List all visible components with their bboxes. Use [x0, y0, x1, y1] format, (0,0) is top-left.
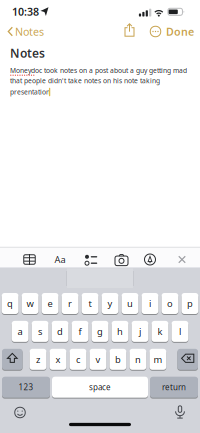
button[interactable]: g [92, 320, 108, 343]
button[interactable]: e [42, 292, 58, 315]
button[interactable]: z [30, 348, 46, 371]
staticText: return [162, 382, 186, 392]
button[interactable]: y [102, 292, 118, 315]
staticText: 10:38 [12, 4, 39, 19]
button[interactable]: Emoji [14, 406, 26, 418]
button[interactable]: f [72, 320, 88, 343]
button[interactable]: a [12, 320, 28, 343]
staticText: c [76, 353, 80, 365]
button[interactable]: Notes [0, 21, 44, 41]
staticText: g [97, 325, 103, 338]
staticText: z [36, 353, 40, 365]
button[interactable]: 123 [2, 376, 50, 399]
button[interactable]: j [132, 320, 148, 343]
button[interactable]: c [70, 348, 86, 371]
button[interactable]: Insert table [23, 253, 36, 266]
button[interactable]: b [109, 348, 126, 371]
button[interactable]: v [89, 348, 106, 371]
button[interactable]: k [152, 320, 168, 343]
button[interactable]: n [129, 348, 146, 371]
button[interactable]: o [161, 292, 178, 315]
button[interactable]: Done [166, 23, 194, 39]
button[interactable]: Shift [2, 348, 23, 371]
staticText: space [89, 382, 111, 392]
staticText: l [179, 325, 181, 338]
button[interactable]: Share [120, 23, 138, 38]
button[interactable]: return [150, 376, 198, 399]
staticText: Moneydoc took notes on a post about a gu… [10, 66, 187, 75]
button[interactable]: s [32, 320, 48, 343]
button[interactable]: p [181, 292, 198, 315]
staticText: a [18, 325, 23, 338]
staticText: k [157, 325, 162, 338]
staticText: j [139, 325, 141, 338]
staticText: x [55, 353, 60, 365]
staticText: that people didn't take notes on his not… [10, 76, 160, 85]
staticText: e [48, 297, 53, 310]
button[interactable]: u [122, 292, 138, 315]
button[interactable]: Text formatting [53, 253, 67, 266]
button[interactable]: Markup [144, 254, 155, 265]
staticText: p [187, 297, 193, 310]
staticText: presentation [10, 88, 50, 96]
staticText: y [107, 297, 112, 310]
staticText: Notes [10, 45, 45, 61]
button[interactable]: Checklist [84, 254, 97, 266]
staticText: v [95, 353, 100, 365]
staticText: 123 [18, 382, 33, 392]
staticText: q [7, 297, 13, 310]
staticText: o [167, 297, 173, 310]
button[interactable]: Dictate [174, 405, 186, 418]
staticText: d [57, 325, 63, 338]
button[interactable]: h [112, 320, 128, 343]
button[interactable]: More [148, 24, 162, 38]
staticText: f [78, 325, 81, 338]
staticText: u [127, 297, 133, 310]
staticText: s [38, 325, 42, 338]
button[interactable]: l [171, 320, 188, 343]
button[interactable]: Insert photo [115, 254, 128, 266]
button[interactable]: Dismiss keyboard toolbar [178, 255, 186, 264]
staticText: Aa [54, 253, 65, 266]
staticText: n [135, 353, 141, 365]
button[interactable]: t [82, 292, 98, 315]
staticText: Done [166, 24, 194, 39]
button[interactable]: x [50, 348, 66, 371]
button[interactable]: d [52, 320, 68, 343]
button[interactable]: i [142, 292, 158, 315]
button[interactable]: w [22, 292, 38, 315]
button[interactable]: m [149, 348, 166, 371]
staticText: w [27, 297, 34, 310]
button[interactable]: space [52, 376, 148, 399]
staticText: t [88, 297, 91, 310]
staticText: Notes [15, 24, 44, 39]
staticText: h [117, 325, 123, 338]
staticText: b [115, 353, 121, 365]
staticText: r [68, 297, 72, 310]
staticText: i [149, 297, 151, 310]
button[interactable]: q [2, 292, 18, 315]
button[interactable]: Delete [177, 348, 198, 371]
button[interactable]: r [62, 292, 78, 315]
staticText: m [153, 353, 162, 365]
